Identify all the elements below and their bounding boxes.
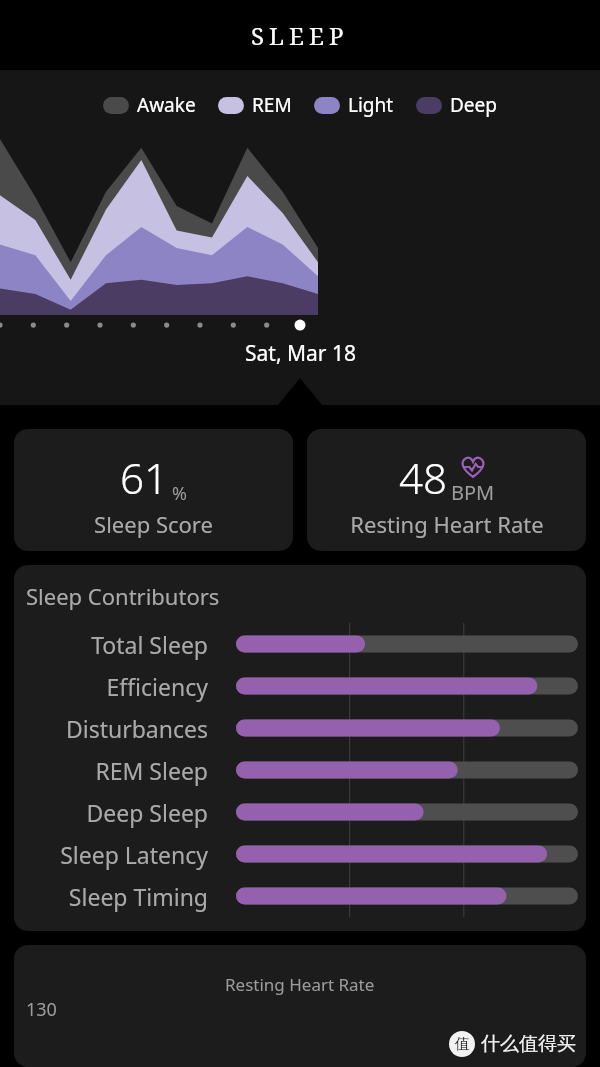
staticText: Sleep Score	[94, 509, 213, 539]
staticText: BPM	[451, 479, 495, 506]
staticText: Sleep Contributors	[26, 581, 220, 611]
button[interactable]: Efficiency	[14, 665, 586, 707]
staticText: 61	[120, 449, 168, 506]
staticText: 什么值得买	[481, 1032, 576, 1056]
staticText: 48	[399, 449, 447, 506]
staticText: 值	[455, 1035, 470, 1054]
button[interactable]: Sleep Contributors	[14, 565, 586, 931]
button[interactable]: Resting Heart Rate	[14, 945, 586, 1067]
staticText: REM Sleep	[95, 755, 208, 786]
staticText: Light	[348, 92, 394, 118]
staticText: %	[172, 481, 187, 506]
button[interactable]: Sleep Latency	[14, 833, 586, 875]
button[interactable]: REM Sleep	[14, 749, 586, 791]
button[interactable]: 61	[14, 429, 293, 551]
button[interactable]: Light	[314, 92, 394, 118]
button[interactable]: Sleep Timing	[14, 875, 586, 917]
staticText: SLEEP	[251, 19, 349, 52]
staticText: Efficiency	[106, 671, 208, 702]
staticText: Deep	[450, 92, 497, 118]
staticText: Sleep Latency	[60, 839, 208, 870]
other: Heart rate	[460, 456, 486, 478]
staticText: Disturbances	[65, 713, 208, 744]
staticText: 130	[26, 997, 57, 1022]
button[interactable]: Deep	[416, 92, 497, 118]
button[interactable]: Awake	[103, 92, 196, 118]
button[interactable]: Disturbances	[14, 707, 586, 749]
staticText: Deep Sleep	[86, 797, 208, 828]
button[interactable]: REM	[218, 92, 292, 118]
staticText: Resting Heart Rate	[225, 973, 375, 996]
button[interactable]: 48	[307, 429, 586, 551]
button[interactable]: Total Sleep	[14, 623, 586, 665]
staticText: Sat, Mar 18	[245, 339, 356, 368]
button[interactable]: Deep Sleep	[14, 791, 586, 833]
staticText: REM	[252, 92, 292, 118]
staticText: Total Sleep	[91, 629, 208, 660]
staticText: Awake	[137, 92, 196, 118]
staticText: Sleep Timing	[68, 881, 208, 912]
staticText: Resting Heart Rate	[350, 509, 544, 539]
